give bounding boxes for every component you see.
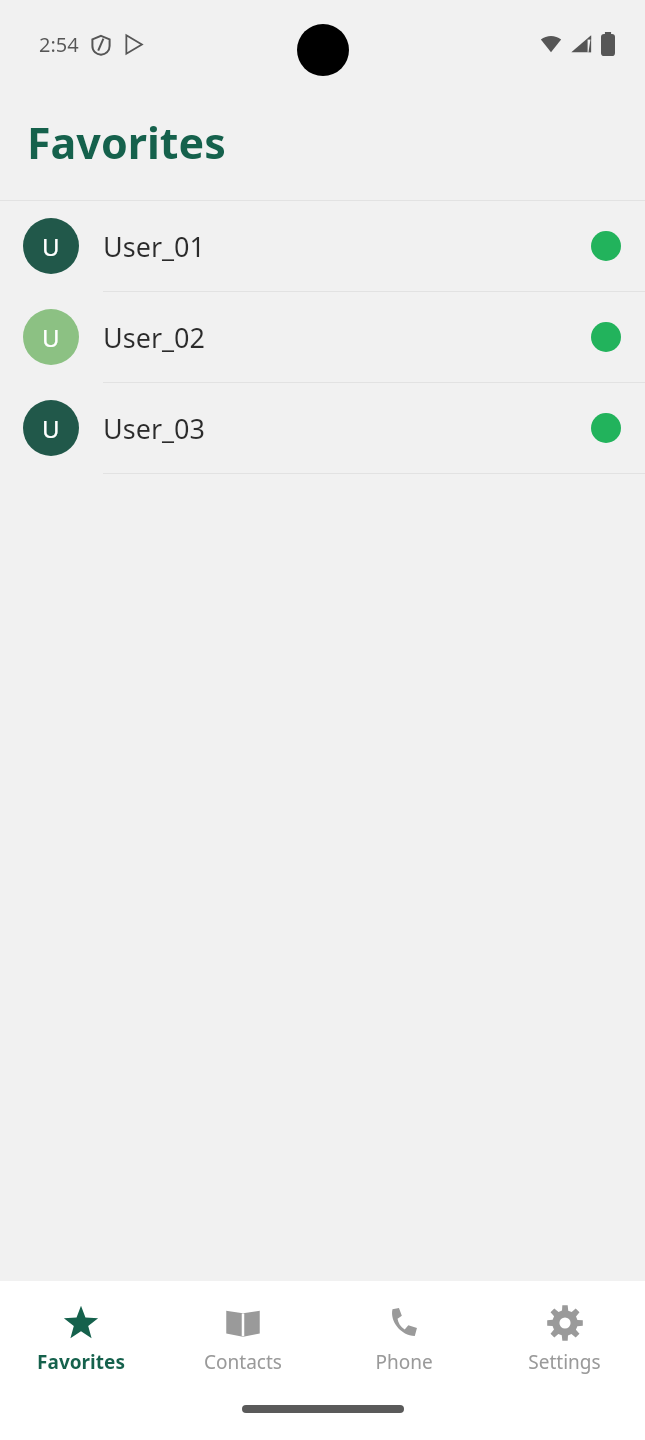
staticText: Contacts [204,1349,282,1375]
button[interactable]: U [0,292,645,383]
staticText: U [42,230,60,263]
staticText: User_02 [103,319,591,356]
staticText: Favorites [37,1349,125,1375]
staticText: User_01 [103,228,591,265]
button[interactable]: Contacts [162,1299,323,1375]
staticText: Phone [375,1349,433,1375]
staticText: U [42,321,60,354]
button[interactable]: U [0,201,645,292]
staticText: 2:54 [39,31,79,58]
button[interactable]: Phone [323,1299,484,1375]
staticText: Settings [528,1349,601,1375]
staticText: User_03 [103,410,591,447]
button[interactable]: Favorites [0,1299,162,1375]
button[interactable]: U [0,383,645,474]
staticText: Favorites [27,113,226,172]
staticText: U [42,412,60,445]
button[interactable]: Settings [484,1299,645,1375]
